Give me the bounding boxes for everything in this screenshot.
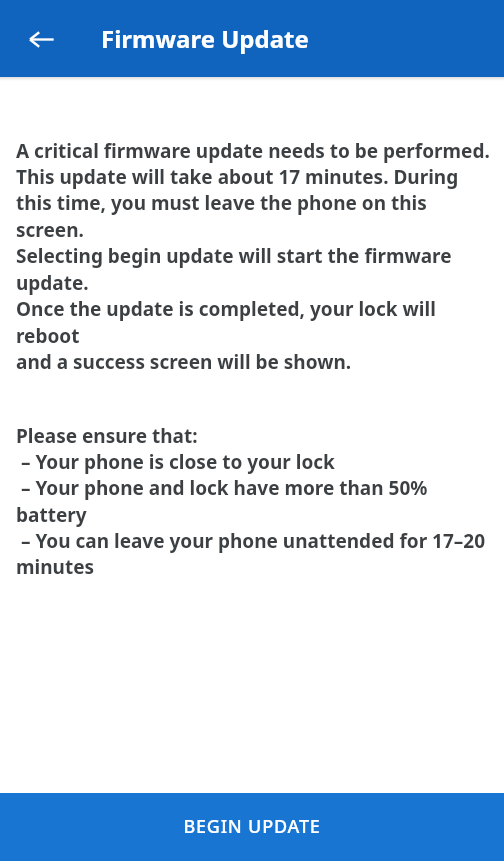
staticText: Firmware Update: [101, 22, 309, 55]
staticText: BEGIN UPDATE: [183, 814, 321, 839]
staticText: Once the update is completed, your lock …: [16, 296, 494, 349]
staticText: and a success screen will be shown.: [16, 349, 352, 375]
staticText: Please ensure that:: [16, 423, 198, 449]
button[interactable]: BEGIN UPDATE: [0, 793, 504, 861]
staticText: this time, you must leave the phone on t…: [16, 190, 494, 243]
staticText: – Your phone is close to your lock: [16, 449, 335, 475]
staticText: A critical firmware update needs to be p…: [16, 138, 490, 164]
staticText: minutes: [16, 554, 95, 580]
staticText: – Your phone and lock have more than 50%…: [16, 475, 494, 528]
button[interactable]: Back: [14, 12, 68, 66]
staticText: Selecting begin update will start the fi…: [16, 243, 494, 296]
staticText: This update will take about 17 minutes. …: [16, 164, 459, 190]
staticText: – You can leave your phone unattended fo…: [16, 528, 486, 554]
